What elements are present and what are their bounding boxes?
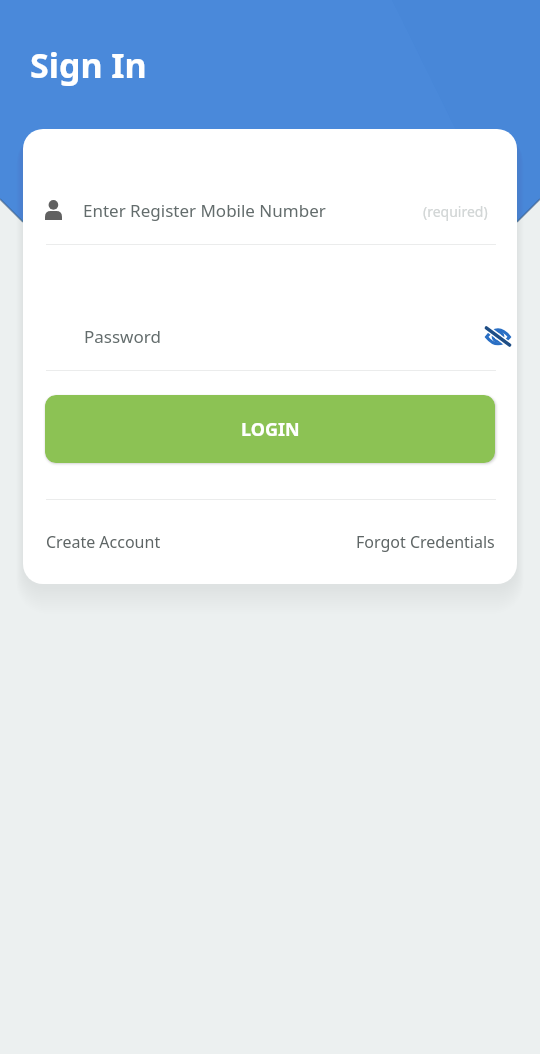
button[interactable]: Password [45, 315, 475, 371]
staticText: Create Account [46, 531, 161, 553]
button[interactable]: Enter Register Mobile Number [45, 189, 495, 245]
button[interactable]: LOGIN [45, 395, 495, 463]
staticText: Forgot Credentials [356, 531, 495, 553]
staticText: (required) [423, 202, 488, 221]
button[interactable]: Show password [484, 322, 512, 350]
staticText: Enter Register Mobile Number [83, 199, 326, 222]
button[interactable]: Create Account [36, 521, 171, 563]
button[interactable]: Forgot Credentials [346, 521, 505, 563]
staticText: LOGIN [241, 417, 300, 442]
staticText: Sign In [30, 42, 147, 88]
staticText: Password [84, 325, 161, 348]
